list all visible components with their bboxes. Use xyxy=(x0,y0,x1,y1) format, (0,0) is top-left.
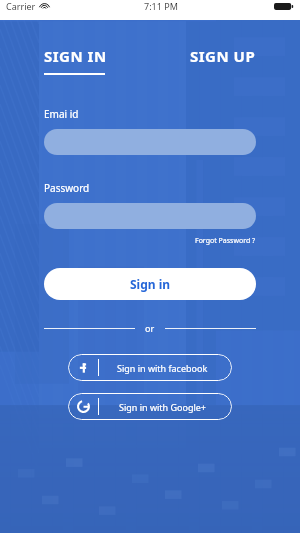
other: Google xyxy=(77,400,90,413)
button[interactable]: Sign in xyxy=(44,268,256,300)
staticText: SIGN IN xyxy=(44,46,107,66)
staticText: Sign in xyxy=(130,276,171,292)
button[interactable]: Facebook xyxy=(68,354,232,381)
button[interactable] xyxy=(44,129,256,155)
staticText: Password xyxy=(44,181,90,195)
staticText: Emai id xyxy=(44,107,79,121)
staticText: or xyxy=(145,322,155,334)
button[interactable]: Google xyxy=(68,393,232,420)
button[interactable] xyxy=(44,203,256,229)
button[interactable]: SIGN IN xyxy=(44,46,107,75)
staticText: SIGN UP xyxy=(190,46,256,66)
staticText: Sign in with Google+ xyxy=(119,401,206,413)
staticText: 7:11 PM xyxy=(144,0,178,12)
button[interactable]: Forgot Password ? xyxy=(195,236,256,246)
button[interactable]: SIGN UP xyxy=(190,46,256,75)
staticText: Sign in with facebook xyxy=(117,362,208,374)
other: Facebook xyxy=(77,361,90,374)
staticText: Carrier xyxy=(6,0,36,12)
staticText: Forgot Password ? xyxy=(195,236,256,246)
